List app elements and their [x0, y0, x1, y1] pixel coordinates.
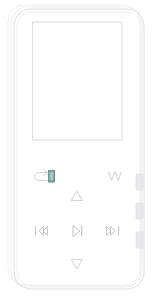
- button[interactable]: Volume up: [66, 186, 88, 208]
- button[interactable]: Battery status: [45, 166, 61, 186]
- button[interactable]: Previous track: [30, 219, 57, 243]
- button[interactable]: Volume down: [66, 252, 88, 274]
- button[interactable]: Side button three: [133, 230, 146, 250]
- button[interactable]: Next track: [98, 219, 125, 243]
- button[interactable]: Side button one: [133, 172, 146, 192]
- button[interactable]: Play or pause: [64, 219, 91, 243]
- button[interactable]: Shuffle: [104, 164, 126, 186]
- button[interactable]: Side button two: [133, 201, 146, 221]
- button[interactable]: Display: [33, 22, 122, 140]
- button[interactable]: Repeat: [30, 164, 52, 186]
